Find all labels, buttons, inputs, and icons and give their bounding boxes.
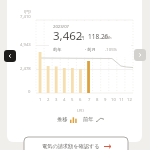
staticText: 2023/07 (53, 24, 69, 30)
staticText: (月) (77, 108, 84, 114)
staticText: 7,410 (20, 14, 31, 20)
staticText: 12 (127, 97, 132, 103)
staticText: 前年 (83, 116, 94, 123)
staticText: 5 (71, 97, 74, 103)
staticText: 電気の請求額を確認する (42, 143, 100, 150)
staticText: (円) (24, 9, 31, 15)
staticText: 6 (79, 97, 82, 103)
button[interactable]: 電気の請求額を確認する (24, 137, 128, 150)
staticText: 10 (111, 97, 116, 103)
staticText: 2 (47, 97, 50, 103)
staticText: 円 (80, 35, 85, 40)
staticText: 3,462 (53, 28, 83, 44)
button[interactable]: 前年 (83, 116, 104, 123)
staticText: 0 (28, 89, 31, 95)
button[interactable]: Next month (134, 49, 146, 61)
staticText: 118.26 (88, 32, 109, 41)
staticText: 11 (119, 97, 124, 103)
staticText: 3 (55, 97, 58, 103)
staticText: 1 (39, 97, 42, 103)
button[interactable]: 推移 (57, 116, 77, 123)
staticText: 9 (104, 97, 107, 103)
staticText: 推移 (57, 116, 68, 123)
button[interactable]: 2023/07 (49, 22, 131, 57)
staticText: -105% (105, 47, 118, 53)
button[interactable]: Previous month (4, 50, 16, 62)
staticText: ・前月 (83, 47, 96, 52)
staticText: 前年 (53, 47, 62, 52)
staticText: kWh (104, 35, 112, 40)
staticText: 4,943 (20, 42, 31, 48)
staticText: 8 (96, 97, 99, 103)
staticText: 7 (88, 97, 91, 103)
staticText: 2,478 (20, 66, 31, 72)
staticText: 4 (63, 97, 66, 103)
